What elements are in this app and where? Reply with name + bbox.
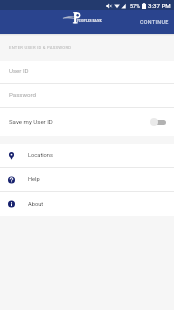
staticText: User ID [9,67,29,74]
staticText: Help [28,176,40,183]
button[interactable]: CONTINUE [135,13,174,31]
staticText: ENTER USER ID & PASSWORD [9,45,72,50]
staticText: 3:37 PM [148,2,171,9]
staticText: Save my User ID [9,118,53,125]
staticText: About [28,201,44,208]
button[interactable]: Save my User ID [0,108,174,135]
staticText: CONTINUE [140,19,169,25]
button[interactable]: User ID [0,61,174,84]
staticText: Locations [28,152,53,159]
button[interactable]: About [0,192,174,216]
button[interactable]: Help [0,168,174,191]
other: Save my User ID [150,118,166,126]
staticText: PEOPLES BANK [77,19,102,23]
staticText: Password [9,91,36,98]
button[interactable]: Locations [0,144,174,167]
staticText: 57% [130,3,141,9]
button[interactable]: Password [0,84,174,108]
